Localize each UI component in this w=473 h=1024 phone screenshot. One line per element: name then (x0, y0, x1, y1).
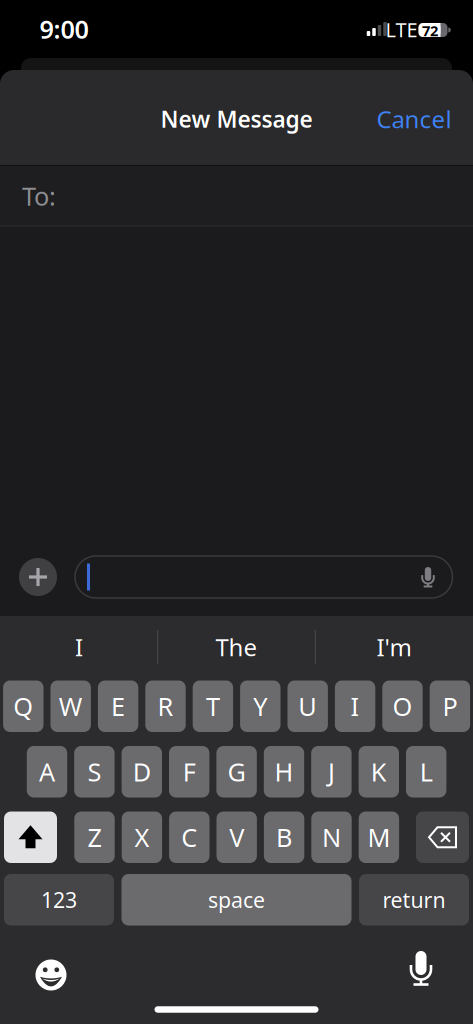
button[interactable]: G (216, 746, 257, 797)
button[interactable]: N (311, 811, 352, 863)
button[interactable]: E (98, 680, 138, 732)
button[interactable]: Q (3, 680, 43, 732)
staticText: I'm (376, 631, 411, 663)
staticText: The (215, 631, 257, 663)
staticText: O (392, 689, 412, 723)
button[interactable]: J (311, 746, 352, 797)
staticText: G (228, 755, 246, 788)
button[interactable]: Z (74, 811, 115, 863)
staticText: 9:00 (39, 12, 88, 46)
button[interactable]: H (264, 746, 304, 797)
button[interactable]: Cancel (376, 103, 451, 135)
staticText: T (206, 689, 220, 723)
staticText: New Message (160, 104, 312, 134)
staticText: Cancel (376, 103, 451, 135)
staticText: Y (253, 689, 267, 723)
button[interactable]: W (50, 680, 91, 732)
button[interactable]: I (4, 624, 154, 670)
staticText: S (87, 755, 101, 788)
staticText: LTE (385, 16, 417, 43)
staticText: C (181, 820, 197, 854)
button[interactable]: Dictation (403, 949, 439, 995)
staticText: N (322, 820, 341, 854)
staticText: P (442, 689, 457, 723)
button[interactable]: T (193, 680, 233, 732)
button[interactable]: Add attachment (19, 558, 57, 596)
button[interactable]: F (169, 746, 209, 797)
button[interactable]: K (359, 746, 399, 797)
button[interactable]: B (264, 811, 304, 863)
button[interactable]: I (335, 680, 375, 732)
staticText: 123 (41, 886, 77, 914)
staticText: V (229, 820, 244, 854)
staticText: L (420, 755, 433, 788)
staticText: W (59, 689, 83, 723)
button[interactable]: R (145, 680, 186, 732)
button[interactable]: Emoji (35, 959, 66, 990)
staticText: U (298, 689, 317, 723)
button[interactable]: Shift (4, 811, 57, 863)
button[interactable]: S (74, 746, 115, 797)
button[interactable]: M (359, 811, 399, 863)
button[interactable]: 123 (4, 874, 114, 925)
button[interactable]: return (359, 874, 469, 925)
button[interactable]: A (27, 746, 67, 797)
staticText: M (367, 820, 390, 854)
button[interactable]: U (287, 680, 328, 732)
staticText: To: (22, 179, 56, 213)
button[interactable]: V (216, 811, 257, 863)
button[interactable]: The (161, 624, 311, 670)
button[interactable]: space (121, 874, 351, 925)
button[interactable]: O (382, 680, 423, 732)
staticText: H (274, 755, 293, 788)
staticText: A (39, 755, 55, 788)
button[interactable]: Delete (416, 811, 469, 863)
staticText: I (351, 689, 360, 723)
staticText: B (276, 820, 292, 854)
staticText: space (208, 886, 265, 914)
button[interactable]: P (430, 680, 470, 732)
button[interactable]: D (122, 746, 162, 797)
button[interactable]: X (122, 811, 162, 863)
button[interactable]: Y (240, 680, 280, 732)
button[interactable]: To: (0, 166, 473, 226)
staticText: return (382, 886, 445, 914)
button[interactable]: Message text field (75, 556, 452, 598)
staticText: 72 (422, 21, 438, 40)
staticText: K (371, 755, 387, 788)
staticText: J (328, 755, 335, 788)
staticText: Q (13, 689, 33, 723)
button[interactable]: C (169, 811, 209, 863)
staticText: R (157, 689, 173, 723)
staticText: E (111, 689, 125, 723)
staticText: I (75, 631, 83, 663)
button[interactable]: I'm (319, 624, 469, 670)
staticText: D (133, 755, 151, 788)
staticText: X (134, 820, 149, 854)
button[interactable]: L (406, 746, 446, 797)
staticText: F (183, 755, 196, 788)
staticText: Z (87, 820, 101, 854)
